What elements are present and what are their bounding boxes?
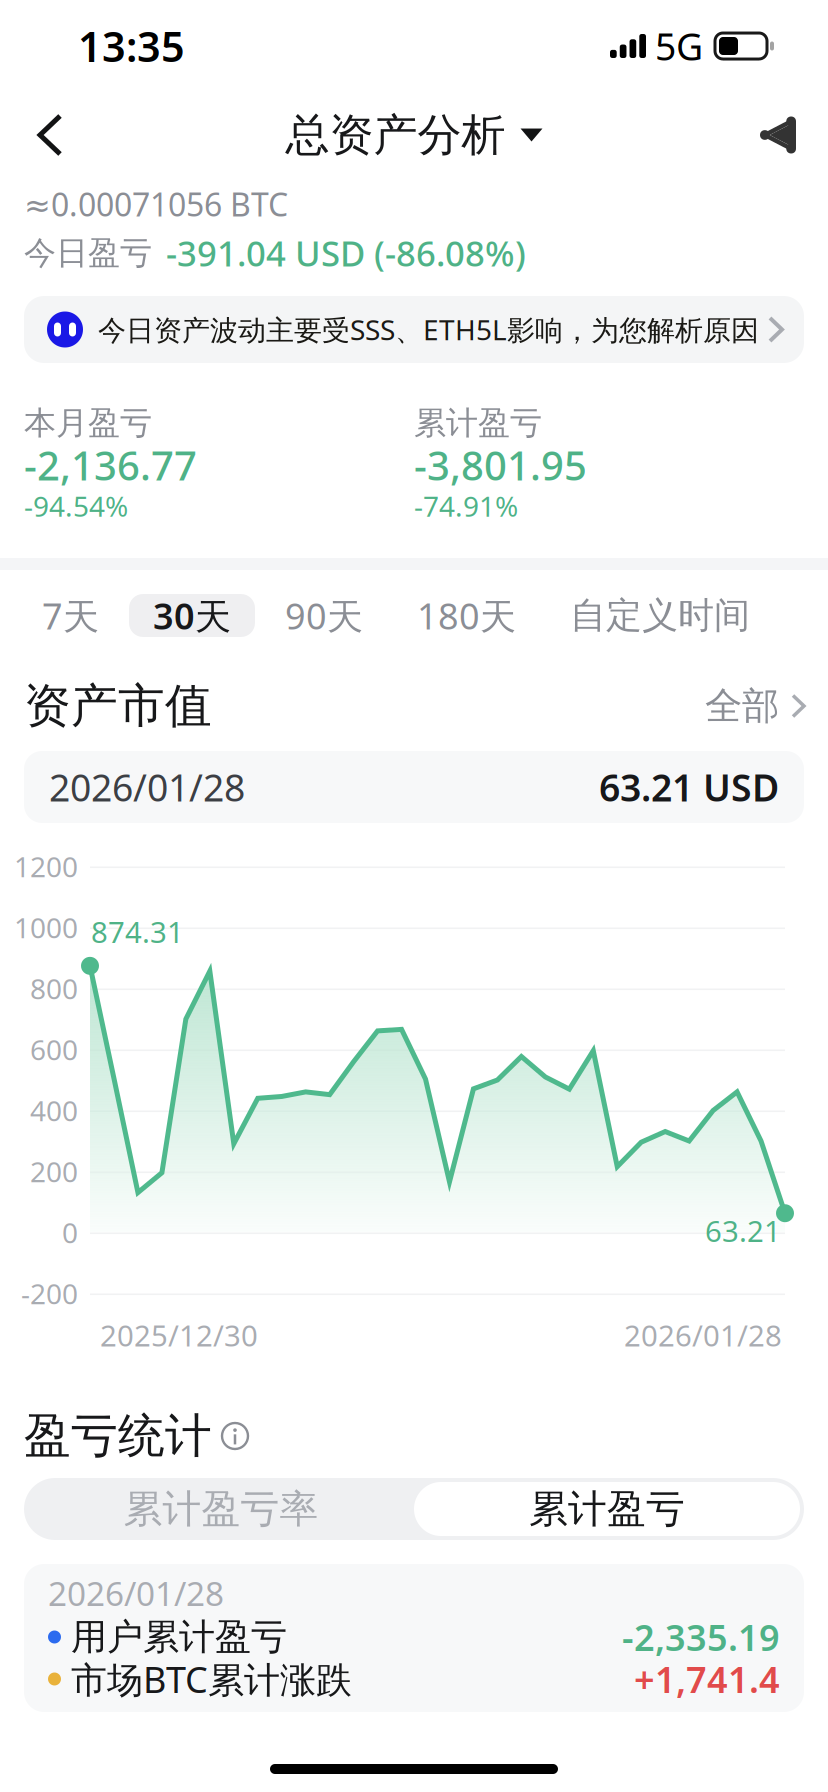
staticText: 2025/12/30 [100,1315,258,1354]
button[interactable]: 180天 [393,594,540,637]
staticText: -3,801.95 [414,438,587,491]
staticText: 180天 [417,592,516,639]
staticText: -2,136.77 [24,438,197,491]
staticText: 13:35 [78,19,185,73]
button[interactable]: 今日资产波动主要受SSS、ETH5L影响，为您解析原因 [24,296,804,363]
button[interactable]: 累计盈亏率 [28,1482,414,1536]
staticText: 400 [30,1092,78,1129]
staticText: 90天 [285,592,363,639]
staticText: -94.54% [24,487,128,525]
staticText: 今日资产波动主要受SSS、ETH5L影响，为您解析原因 [98,311,759,348]
staticText: 累计盈亏 [414,403,542,443]
staticText: 盈亏统计 [24,1407,212,1465]
staticText: -391.04 USD (-86.08%) [166,230,526,276]
staticText: 874.31 [91,912,184,951]
staticText: 总资产分析 [285,108,505,162]
staticText: 600 [30,1031,78,1068]
button[interactable]: 30天 [129,594,255,637]
staticText: 7天 [42,592,99,639]
button[interactable]: Back [2,92,98,178]
staticText: -2,335.19 [622,1613,780,1661]
staticText: 市场BTC累计涨跌 [71,1655,352,1703]
staticText: 2026/01/28 [49,762,245,812]
staticText: 800 [30,970,78,1007]
button[interactable]: 全部 [705,682,804,730]
staticText: 用户累计盈亏 [71,1615,287,1659]
staticText: 1000 [14,909,78,946]
button[interactable]: 累计盈亏 [414,1482,800,1536]
staticText: 30天 [153,592,231,639]
staticText: 200 [30,1153,78,1190]
staticText: 0 [62,1214,78,1251]
staticText: 累计盈亏率 [123,1485,318,1533]
button[interactable]: Share [730,92,826,178]
button[interactable]: 自定义时间 [546,594,774,637]
button[interactable]: 90天 [261,594,387,637]
staticText: 63.21 [705,1211,781,1250]
staticText: 2026/01/28 [48,1571,224,1615]
staticText: -200 [21,1275,78,1312]
button[interactable]: 总资产分析 [285,92,542,178]
staticText: 63.21 USD [599,762,779,812]
staticText: ≈0.00071056 BTC [24,183,288,225]
staticText: +1,741.4 [634,1655,780,1703]
staticText: 5G [655,21,703,71]
staticText: 自定义时间 [570,593,750,638]
staticText: 今日盈亏 [24,233,152,273]
staticText: -74.91% [414,487,518,525]
staticText: 2026/01/28 [624,1315,782,1354]
button[interactable]: 7天 [18,594,123,637]
staticText: 本月盈亏 [24,403,152,443]
staticText: 1200 [14,848,78,885]
staticText: 全部 [705,683,779,729]
staticText: 资产市值 [24,677,212,735]
staticText: 累计盈亏 [529,1485,685,1533]
